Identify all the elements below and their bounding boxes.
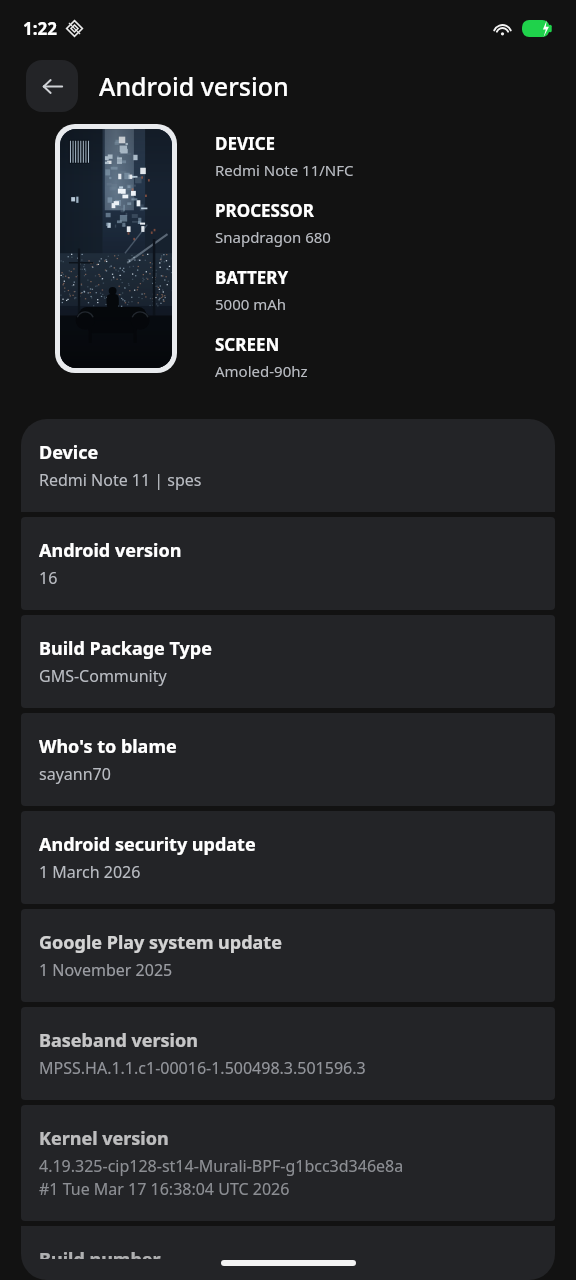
staticText: Build number	[39, 1247, 161, 1259]
button[interactable]: Device	[21, 419, 555, 512]
staticText: Kernel version	[39, 1126, 169, 1151]
staticText: sayann70	[39, 763, 111, 785]
staticText: Snapdragon 680	[215, 227, 331, 247]
button[interactable]: Kernel version	[21, 1105, 555, 1221]
staticText: Google Play system update	[39, 930, 282, 955]
staticText: SCREEN	[215, 333, 280, 356]
button[interactable]: Who's to blame	[21, 713, 555, 806]
staticText: GMS-Community	[39, 665, 167, 687]
staticText: Baseband version	[39, 1028, 198, 1053]
staticText: Build Package Type	[39, 636, 212, 661]
button[interactable]: Build number	[21, 1226, 555, 1280]
staticText: 1:22	[23, 17, 57, 40]
staticText: Redmi Note 11 | spes	[39, 469, 202, 491]
button[interactable]: Build Package Type	[21, 615, 555, 708]
button[interactable]: Back	[26, 60, 78, 112]
staticText: 1 March 2026	[39, 861, 141, 883]
staticText: Android version	[39, 538, 182, 563]
staticText: PROCESSOR	[215, 199, 314, 222]
button[interactable]: Android security update	[21, 811, 555, 904]
staticText: Amoled-90hz	[215, 361, 308, 381]
button[interactable]: Google Play system update	[21, 909, 555, 1002]
staticText: 4.19.325-cip128-st14-Murali-BPF-g1bcc3d3…	[39, 1155, 404, 1177]
staticText: 16	[39, 567, 58, 589]
staticText: Device	[39, 440, 99, 465]
staticText: BATTERY	[215, 266, 289, 289]
staticText: Who's to blame	[39, 734, 177, 759]
button[interactable]: Baseband version	[21, 1007, 555, 1100]
staticText: Android security update	[39, 832, 256, 857]
staticText: Redmi Note 11/NFC	[215, 160, 354, 180]
staticText: MPSS.HA.1.1.c1-00016-1.500498.3.501596.3	[39, 1057, 366, 1079]
staticText: Android version	[99, 69, 289, 103]
staticText: 5000 mAh	[215, 294, 287, 314]
button[interactable]: Android version	[21, 517, 555, 610]
staticText: DEVICE	[215, 132, 276, 155]
staticText: #1 Tue Mar 17 16:38:04 UTC 2026	[39, 1178, 290, 1200]
staticText: 1 November 2025	[39, 959, 173, 981]
